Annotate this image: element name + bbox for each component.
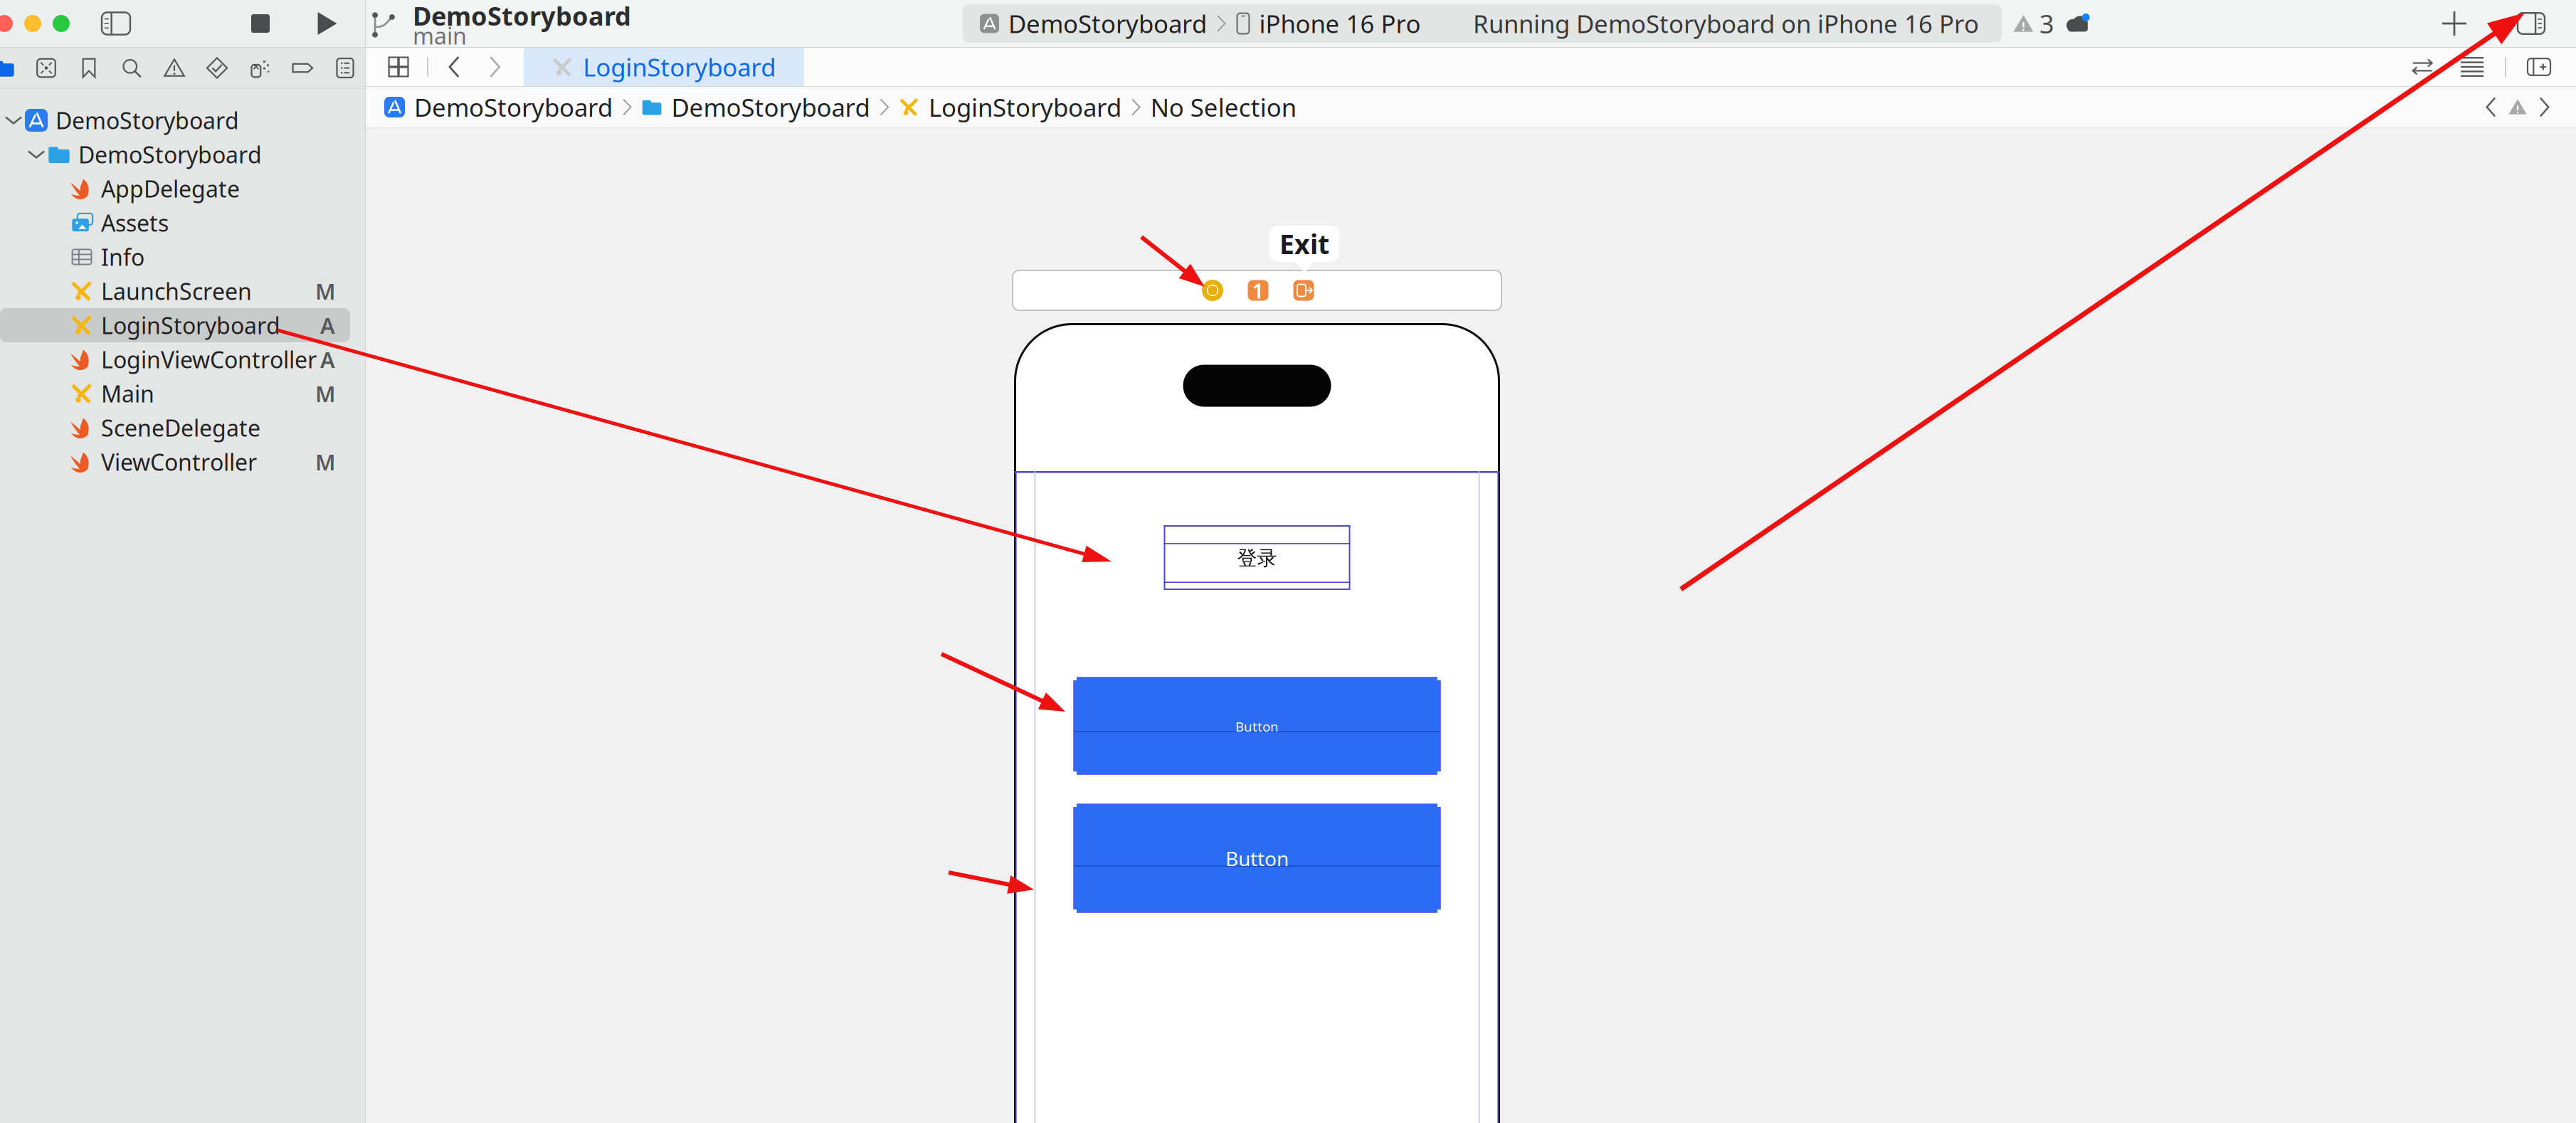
staticText: DemoStoryboard	[56, 105, 239, 135]
button[interactable]: Navigator tab 2	[28, 48, 65, 88]
button[interactable]: Forward	[478, 48, 509, 86]
staticText: LoginViewController	[101, 344, 317, 375]
button[interactable]: Run	[307, 0, 347, 47]
button[interactable]: Editor Options	[381, 48, 416, 86]
staticText: Info	[101, 242, 144, 272]
staticText: main	[413, 20, 467, 51]
staticText: DemoStoryboard	[1008, 7, 1207, 40]
button[interactable]: Next Issue	[2528, 87, 2559, 127]
button[interactable]: Add	[2427, 0, 2481, 47]
staticText: LoginStoryboard	[583, 51, 776, 83]
staticText: Button	[1225, 845, 1289, 872]
staticText: M	[315, 447, 335, 476]
staticText: iPhone 16 Pro	[1259, 7, 1421, 40]
button[interactable]: Swap Editor	[2403, 48, 2442, 86]
button[interactable]: Hide Navigator	[95, 0, 137, 47]
button[interactable]: Navigator tab 3	[70, 48, 107, 88]
staticText: DemoStoryboard	[414, 91, 613, 123]
button[interactable]: LaunchScreen	[0, 274, 365, 308]
staticText: 3	[2039, 6, 2054, 40]
staticText: DemoStoryboard	[413, 0, 631, 33]
staticText: M	[315, 379, 335, 408]
button[interactable]: DemoStoryboard	[0, 137, 365, 172]
staticText: ViewController	[101, 447, 257, 477]
staticText: Running DemoStoryboard on iPhone 16 Pro	[1473, 7, 1979, 40]
button[interactable]: Stop	[242, 0, 279, 47]
staticText: Exit	[1279, 226, 1329, 261]
button[interactable]: ViewController	[0, 445, 365, 479]
staticText: LaunchScreen	[101, 276, 252, 306]
staticText: Main	[101, 378, 154, 409]
button[interactable]: Info	[0, 240, 365, 274]
button[interactable]: Assets	[0, 206, 365, 240]
button[interactable]: LoginViewController	[0, 342, 365, 376]
button[interactable]: AppDelegate	[0, 172, 365, 206]
button[interactable]: Navigator tab 9	[327, 48, 364, 88]
button[interactable]: Back	[440, 48, 471, 86]
button[interactable]: Navigator tab 4	[113, 48, 150, 88]
button[interactable]: DemoStoryboard	[0, 103, 365, 137]
button[interactable]: Navigator tab 7	[241, 48, 278, 88]
button[interactable]: First Responder	[1198, 276, 1227, 305]
button[interactable]: LoginStoryboard	[0, 308, 365, 342]
button[interactable]: Exit	[1289, 276, 1318, 305]
staticText: Button	[1235, 718, 1279, 735]
button[interactable]: SceneDelegate	[0, 411, 365, 445]
staticText: AppDelegate	[101, 174, 240, 204]
button[interactable]: Navigator tab 6	[199, 48, 236, 88]
button[interactable]: Navigator tab 1	[0, 48, 22, 88]
button[interactable]: Navigator tab 5	[156, 48, 193, 88]
button[interactable]: Editor Layout	[2452, 48, 2492, 86]
staticText: LoginStoryboard	[101, 310, 280, 340]
staticText: Assets	[101, 208, 169, 238]
button[interactable]: Previous Issue	[2476, 87, 2508, 127]
staticText: A	[320, 345, 335, 374]
button[interactable]: Add Editor	[2519, 48, 2559, 86]
staticText: 登录	[1237, 546, 1277, 571]
staticText: SceneDelegate	[101, 413, 260, 443]
staticText: A	[320, 311, 335, 340]
staticText: LoginStoryboard	[929, 91, 1122, 123]
staticText: DemoStoryboard	[671, 91, 870, 123]
staticText: No Selection	[1150, 91, 1296, 123]
button[interactable]: LoginStoryboard	[524, 48, 804, 86]
staticText: DemoStoryboard	[78, 139, 262, 170]
staticText: 1	[1252, 276, 1264, 304]
button[interactable]: Hide Inspector	[2510, 0, 2553, 47]
button[interactable]: View Controller Scene	[1244, 276, 1272, 305]
button[interactable]: Main	[0, 376, 365, 411]
button[interactable]: Navigator tab 8	[284, 48, 321, 88]
staticText: M	[315, 277, 335, 306]
